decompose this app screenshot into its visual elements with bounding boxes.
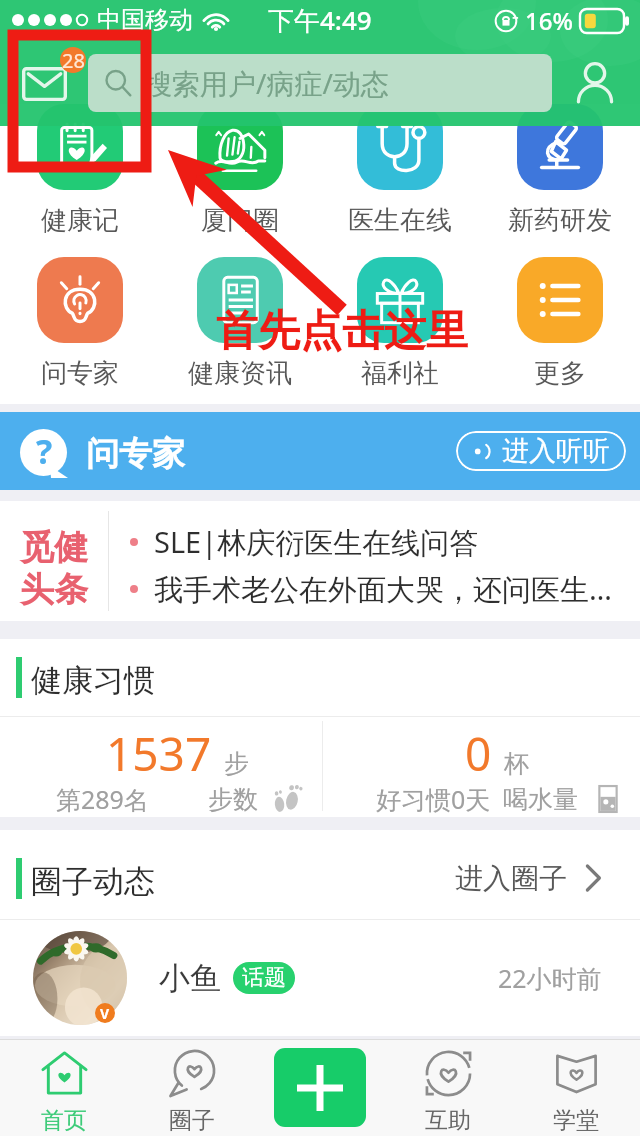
button[interactable]: Add post <box>274 1048 366 1127</box>
staticText: 问专家 <box>41 357 119 390</box>
button[interactable]: 1537 <box>0 717 320 817</box>
staticText: 觅健 <box>20 526 88 569</box>
staticText: ? <box>36 428 53 474</box>
button[interactable]: 福利社 <box>320 257 480 390</box>
staticText: V <box>100 1004 110 1023</box>
staticText: 互助 <box>425 1106 471 1135</box>
staticText: 厦门圈 <box>201 204 279 237</box>
button[interactable]: 医生在线 <box>320 104 480 237</box>
staticText: 圈子动态 <box>31 862 155 901</box>
staticText: 新药研发 <box>508 204 612 237</box>
staticText: 步数 <box>208 784 258 815</box>
staticText: 中国移动 <box>97 5 193 35</box>
staticText: 喝水量 <box>503 784 578 815</box>
staticText: 22小时前 <box>498 961 602 995</box>
button[interactable]: 厦门圈 <box>160 104 320 237</box>
staticText: 话题 <box>242 964 286 992</box>
staticText: 我手术老公在外面大哭，还问医生… <box>154 569 612 609</box>
button[interactable]: 进入圈子 <box>455 849 625 907</box>
button[interactable]: 更多 <box>480 257 640 390</box>
staticText: 医生在线 <box>348 204 452 237</box>
staticText: SLE|林庆衍医生在线问答 <box>154 522 479 562</box>
button[interactable]: 进入听听 <box>456 431 626 471</box>
button[interactable]: 圈子 <box>128 1039 256 1136</box>
staticText: 0 <box>465 722 492 785</box>
staticText: 1537 <box>106 722 212 785</box>
staticText: 小鱼 <box>159 959 221 998</box>
staticText: 28 <box>62 47 85 73</box>
button[interactable]: 互助 <box>384 1039 512 1136</box>
button[interactable]: 首页 <box>0 1039 128 1136</box>
button[interactable]: 问专家 <box>0 257 160 390</box>
button[interactable]: Messages <box>10 40 78 98</box>
staticText: 杯 <box>504 748 529 779</box>
staticText: 进入圈子 <box>455 861 567 896</box>
button[interactable]: 搜索用户/病症/动态 <box>88 54 552 112</box>
staticText: 首先点击这里 <box>216 305 468 358</box>
staticText: 步 <box>224 748 249 779</box>
staticText: 下午4:49 <box>268 2 372 38</box>
staticText: 健康资讯 <box>188 357 292 390</box>
button[interactable]: Profile <box>562 50 628 116</box>
button[interactable]: V <box>0 920 640 1036</box>
button[interactable]: 学堂 <box>512 1039 640 1136</box>
button[interactable]: 新药研发 <box>480 104 640 237</box>
staticText: 进入听听 <box>502 434 610 468</box>
button[interactable]: 健康记 <box>0 104 160 237</box>
button[interactable]: 健康资讯 <box>160 257 320 390</box>
staticText: 福利社 <box>361 357 439 390</box>
staticText: 头条 <box>20 568 88 611</box>
staticText: 更多 <box>534 357 586 390</box>
staticText: 圈子 <box>169 1106 215 1135</box>
staticText: 健康习惯 <box>31 661 155 700</box>
staticText: 问专家 <box>86 433 185 475</box>
button[interactable]: 0 <box>320 717 640 817</box>
staticText: 学堂 <box>553 1106 599 1135</box>
staticText: 搜索用户/病症/动态 <box>144 64 389 102</box>
staticText: 第289名 <box>56 782 149 816</box>
staticText: 好习惯0天 <box>376 782 491 816</box>
staticText: 首页 <box>41 1106 87 1135</box>
staticText: 16% <box>525 4 573 37</box>
staticText: 健康记 <box>41 204 119 237</box>
